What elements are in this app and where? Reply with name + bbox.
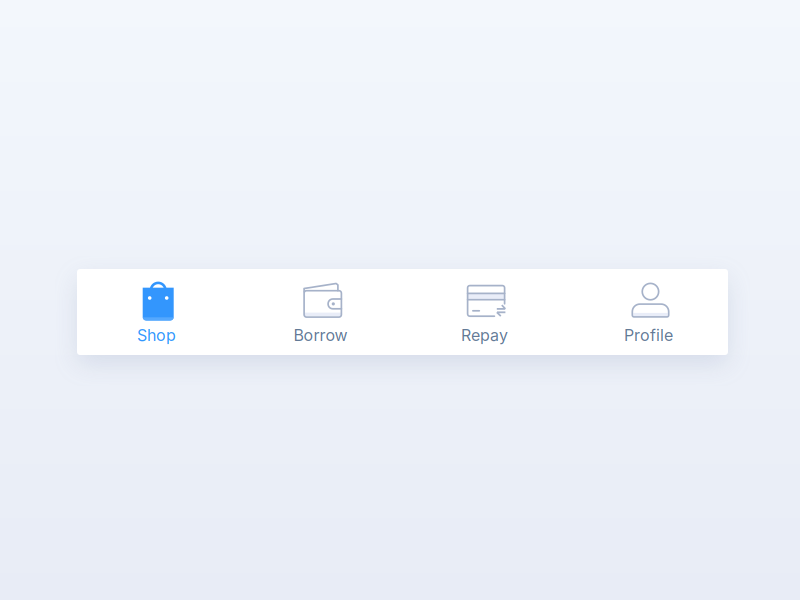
staticText: Repay [461, 325, 508, 345]
button[interactable]: Shop [74, 269, 238, 355]
button[interactable]: Profile [566, 269, 730, 355]
staticText: Shop [137, 325, 176, 345]
staticText: Borrow [293, 325, 347, 345]
button[interactable]: Repay [402, 269, 566, 355]
staticText: Profile [624, 325, 673, 345]
button[interactable]: Borrow [238, 269, 402, 355]
